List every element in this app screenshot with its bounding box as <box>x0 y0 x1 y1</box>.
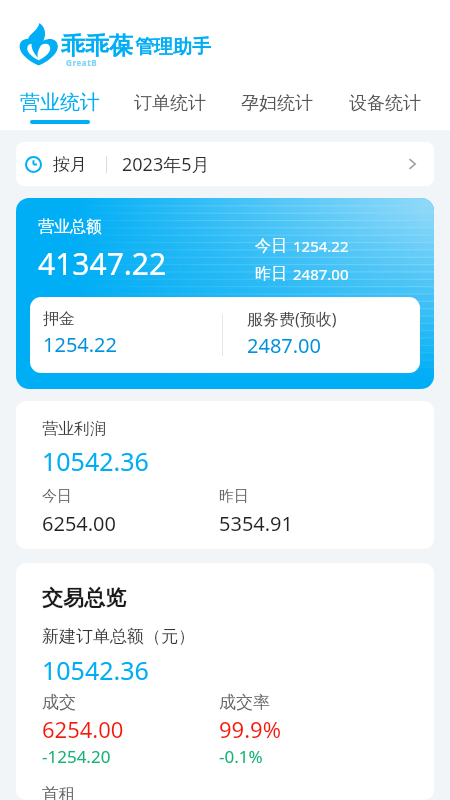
button[interactable]: 设备统计 <box>330 82 439 130</box>
staticText: 41347.22 <box>38 243 167 284</box>
staticText: 今日 <box>42 487 72 506</box>
staticText: 今日 <box>255 236 287 256</box>
staticText: -0.1% <box>219 745 263 768</box>
staticText: 服务费(预收) <box>247 308 337 330</box>
staticText: 昨日 <box>255 264 287 284</box>
staticText: 营业利润 <box>42 419 106 439</box>
staticText: 10542.36 <box>42 444 149 478</box>
staticText: 6254.00 <box>42 510 116 537</box>
staticText: GreatB <box>66 57 98 68</box>
staticText: 孕妇统计 <box>241 92 313 115</box>
staticText: 管理助手 <box>135 35 211 59</box>
staticText: 2023年5月 <box>122 152 210 177</box>
staticText: 营业统计 <box>20 90 100 115</box>
staticText: 1254.22 <box>43 331 117 358</box>
staticText: 2487.00 <box>247 332 321 359</box>
staticText: 押金 <box>43 309 75 329</box>
button[interactable]: 按月 <box>16 142 434 186</box>
staticText: 乖乖葆 <box>61 31 133 61</box>
staticText: -1254.20 <box>42 745 111 768</box>
button[interactable]: 孕妇统计 <box>221 82 330 130</box>
button[interactable]: 订单统计 <box>112 82 221 130</box>
button[interactable]: 营业统计 <box>2 82 112 130</box>
staticText: 交易总览 <box>42 585 126 611</box>
staticText: 成交 <box>42 692 76 713</box>
staticText: 新建订单总额（元） <box>42 626 195 647</box>
staticText: 10542.36 <box>42 653 149 687</box>
staticText: 2487.00 <box>293 264 349 284</box>
staticText: 5354.91 <box>219 510 293 537</box>
staticText: 订单统计 <box>134 92 206 115</box>
staticText: 昨日 <box>219 487 249 506</box>
staticText: 设备统计 <box>349 92 421 115</box>
staticText: 成交率 <box>219 692 270 713</box>
staticText: 99.9% <box>219 714 281 744</box>
staticText: 按月 <box>53 154 87 175</box>
other: 乖乖葆 logo <box>20 21 59 67</box>
staticText: 6254.00 <box>42 714 124 744</box>
staticText: 首租 <box>42 784 76 800</box>
staticText: 1254.22 <box>293 236 349 256</box>
staticText: 营业总额 <box>38 217 102 237</box>
